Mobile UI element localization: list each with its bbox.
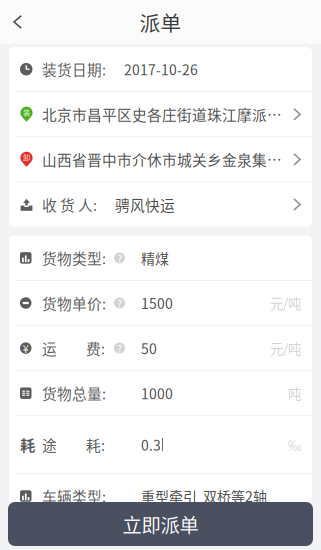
- staticText: 途: [42, 434, 57, 455]
- staticText: 车辆类型:: [42, 485, 106, 507]
- staticText: 1000: [141, 383, 173, 403]
- staticText: 运: [42, 337, 57, 359]
- staticText: ?: [117, 488, 122, 504]
- staticText: 精煤: [141, 248, 169, 268]
- staticText: 北京市昌平区史各庄街道珠江摩派珠…: [42, 104, 287, 125]
- staticText: 耗: [20, 433, 35, 456]
- staticText: 卸: [23, 152, 30, 162]
- button[interactable]: 收 货 人:: [9, 182, 312, 227]
- button[interactable]: Back: [0, 0, 36, 44]
- staticText: 货物类型:: [42, 247, 106, 268]
- staticText: ?: [117, 295, 122, 311]
- staticText: 50: [141, 338, 157, 358]
- staticText: 装货日期:: [42, 59, 106, 80]
- staticText: 元/吨: [270, 338, 301, 358]
- staticText: ‰: [288, 435, 301, 454]
- button[interactable]: 卸: [9, 137, 312, 182]
- staticText: 立即派单: [122, 510, 198, 538]
- staticText: 1500: [141, 293, 173, 313]
- staticText: 2017-10-26: [124, 59, 198, 79]
- staticText: 吨: [288, 383, 301, 403]
- staticText: 元/吨: [270, 293, 301, 313]
- staticText: 重型牵引 双桥等2轴: [141, 486, 267, 506]
- staticText: 费:: [86, 337, 105, 359]
- staticText: ¥: [23, 341, 29, 356]
- staticText: 0.3: [141, 434, 161, 455]
- button[interactable]: 立即派单: [8, 502, 313, 546]
- staticText: ?: [117, 340, 122, 356]
- staticText: ?: [117, 250, 122, 266]
- staticText: 耗:: [86, 434, 105, 455]
- staticText: 收 货 人:: [42, 194, 97, 215]
- staticText: 派单: [139, 7, 181, 37]
- staticText: 骋风快运: [115, 194, 175, 215]
- button[interactable]: 装: [9, 92, 312, 136]
- staticText: 山西省晋中市介休市城关乡金泉集团…: [42, 149, 287, 170]
- staticText: 装: [23, 107, 30, 117]
- staticText: 货物单价:: [42, 292, 106, 314]
- staticText: 货物总量:: [42, 383, 106, 404]
